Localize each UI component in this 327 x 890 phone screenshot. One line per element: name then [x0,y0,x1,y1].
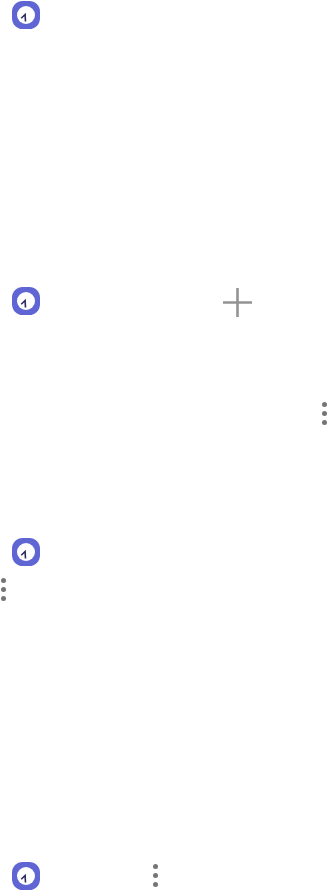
button[interactable]: More options [143,854,167,890]
button[interactable]: More options [0,568,15,611]
button[interactable]: Open item [4,530,48,574]
button[interactable]: Profile [4,854,48,890]
button[interactable]: Add [215,280,259,324]
button[interactable]: Account [4,279,48,323]
button[interactable]: Home [4,0,48,37]
button[interactable]: More options [311,392,327,435]
